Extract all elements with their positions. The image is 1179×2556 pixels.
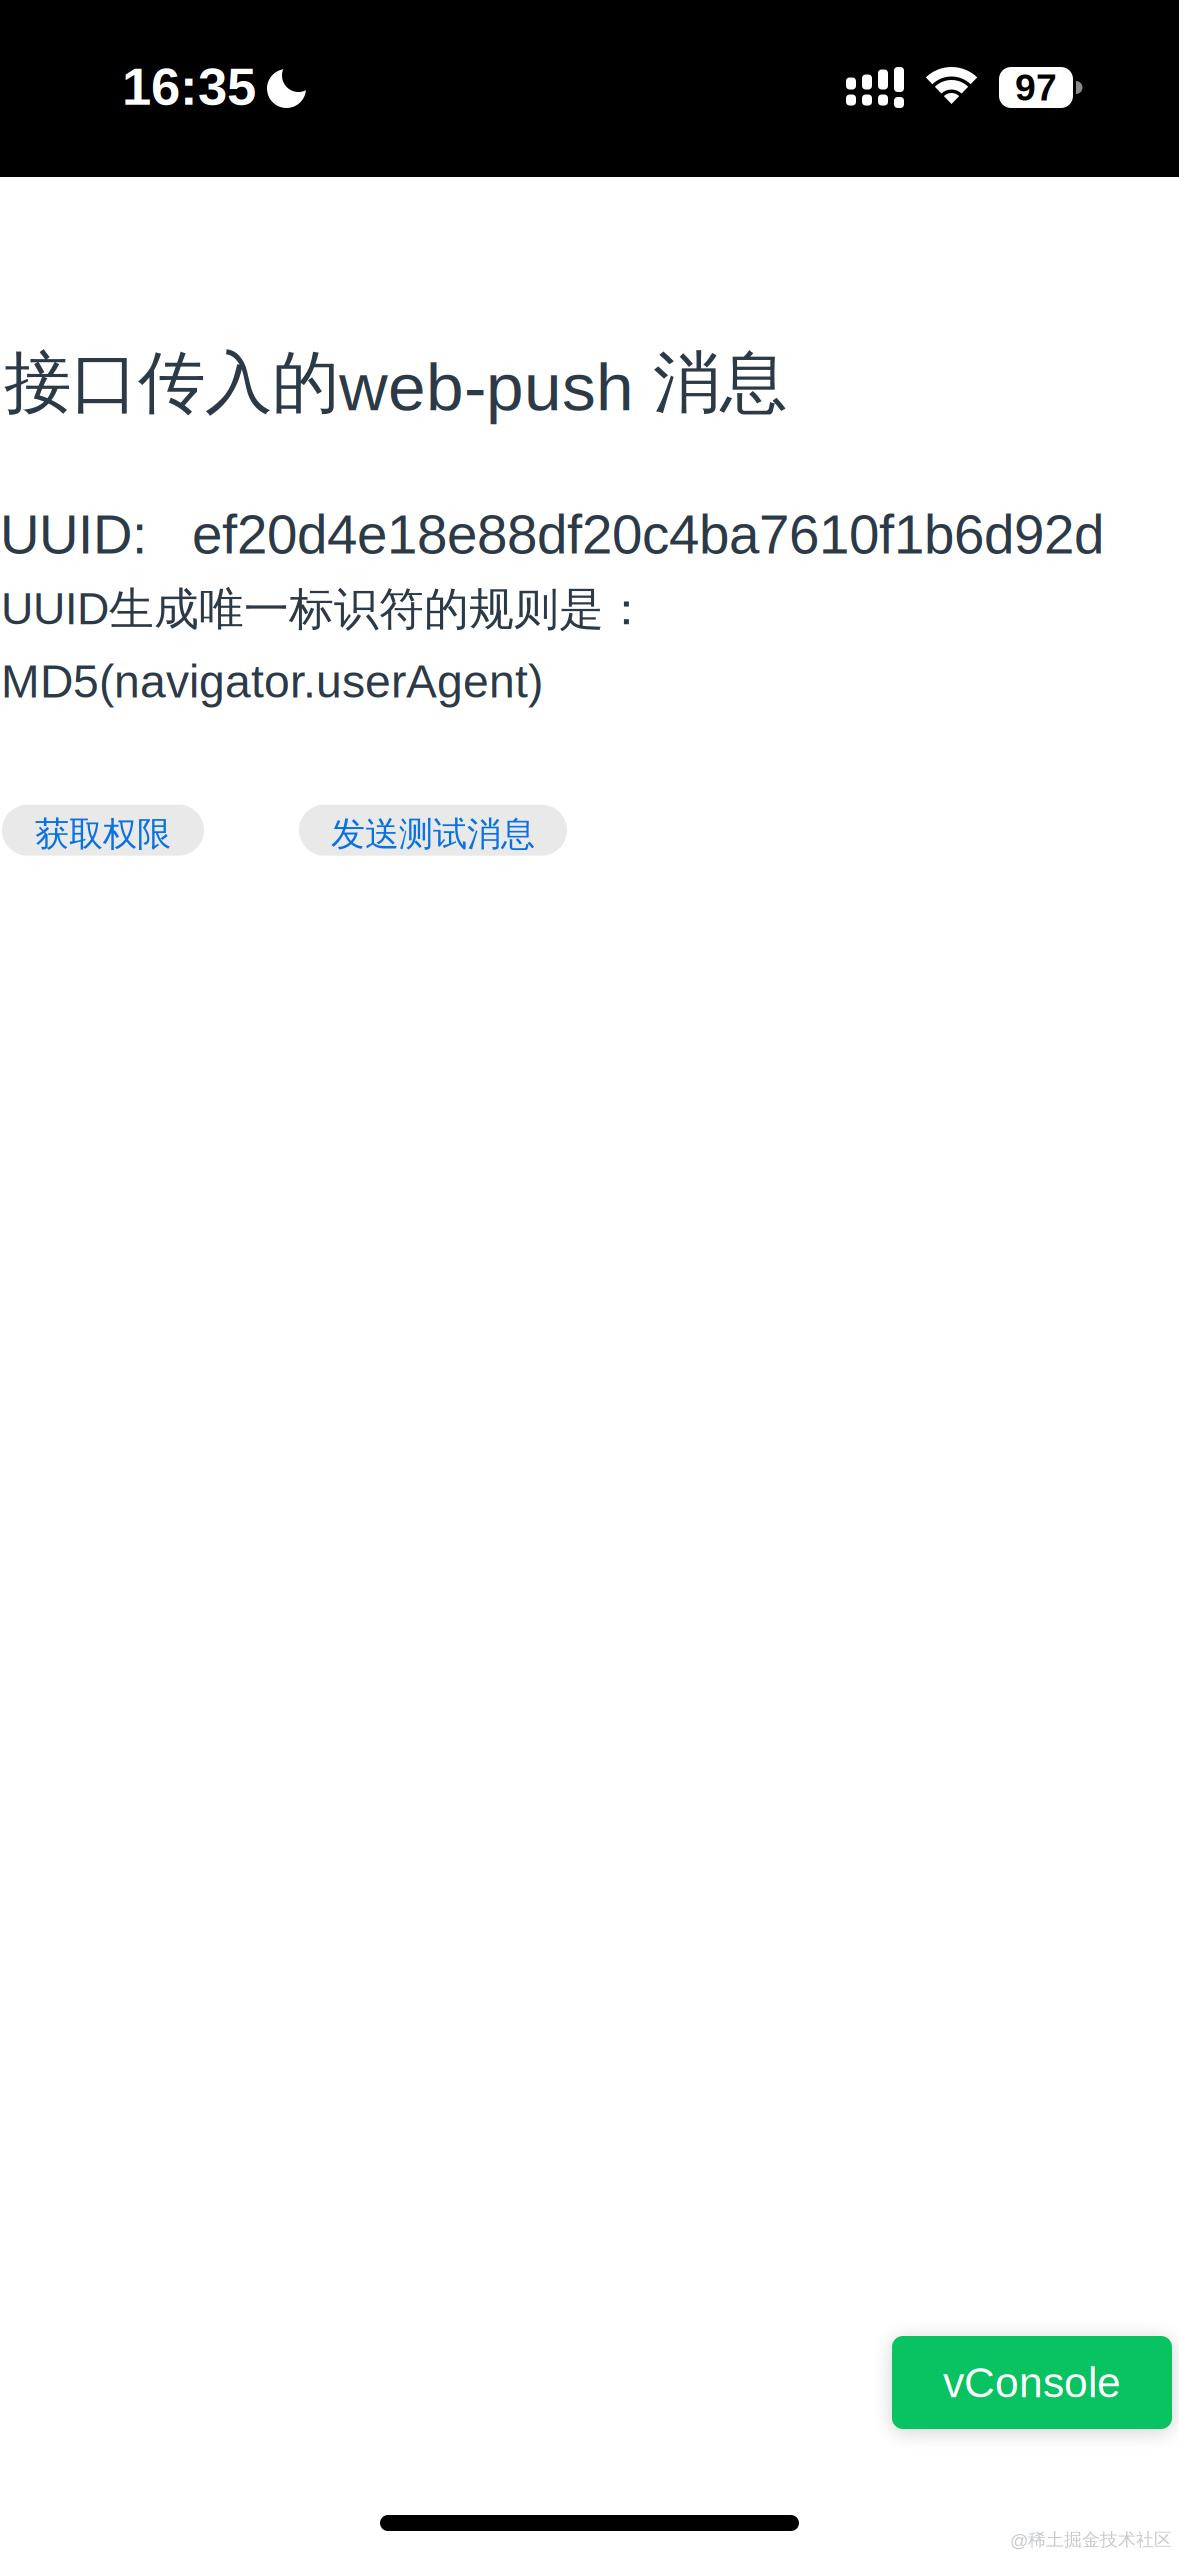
staticText: 接口传入的web-push 消息 [4,341,787,426]
staticText: UUID: ef20d4e18e88df20c4ba7610f1b6d92d [0,504,1104,565]
button[interactable]: 获取权限 [2,805,204,856]
staticText: vConsole [943,2359,1121,2406]
staticText: 发送测试消息 [331,813,535,856]
staticText: @稀土掘金技术社区 [1010,2528,1172,2551]
button[interactable]: 发送测试消息 [299,805,567,856]
staticText: 97 [1015,67,1057,108]
staticText: 获取权限 [35,813,171,856]
button[interactable]: vConsole [892,2336,1172,2429]
staticText: MD5(navigator.userAgent) [1,655,543,707]
staticText: 16:35 [122,57,256,116]
staticText: UUID生成唯一标识符的规则是： [1,581,649,637]
